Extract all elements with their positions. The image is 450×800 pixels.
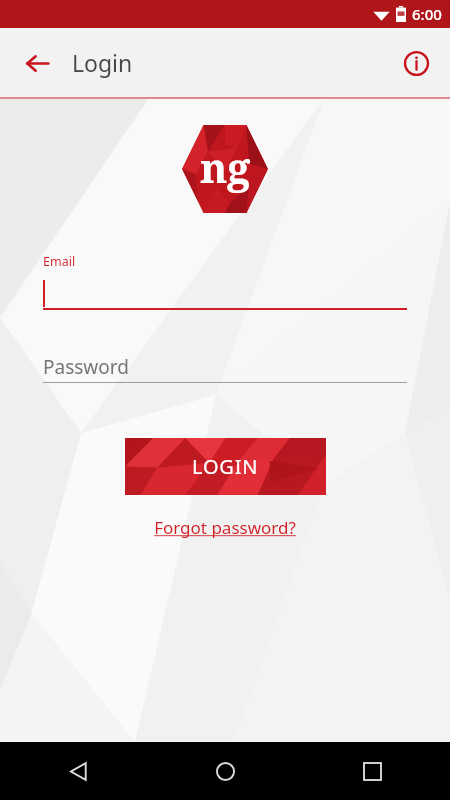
staticText: Password xyxy=(43,354,129,380)
button[interactable]: LOGIN xyxy=(125,438,326,495)
button[interactable]: Recent apps xyxy=(350,749,394,793)
button[interactable]: Information xyxy=(394,41,438,85)
staticText: ng xyxy=(200,139,251,195)
button[interactable] xyxy=(43,279,407,308)
staticText: LOGIN xyxy=(192,453,259,480)
staticText: Email xyxy=(43,253,76,270)
button[interactable]: Home xyxy=(203,749,247,793)
button[interactable]: Forgot password? xyxy=(148,513,302,542)
button[interactable]: Back xyxy=(56,749,100,793)
staticText: Forgot password? xyxy=(154,516,296,539)
staticText: 6:00 xyxy=(412,4,442,24)
button[interactable]: Back xyxy=(14,40,60,86)
button[interactable]: Password xyxy=(43,352,407,382)
staticText: Login xyxy=(72,47,133,78)
